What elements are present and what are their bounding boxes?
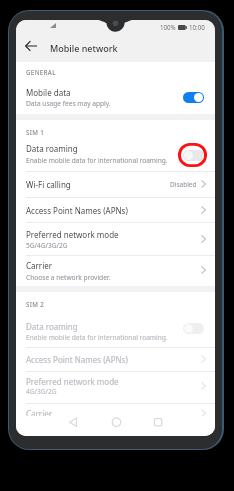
button[interactable] [16,347,215,371]
staticText: Mobile network [50,42,118,54]
button[interactable] [16,141,215,171]
staticText: 10:00 [189,23,205,31]
staticText: 100% [160,23,176,31]
staticText: SIM 1 [26,128,45,136]
button[interactable]: Back [61,416,86,430]
button[interactable] [16,403,215,426]
button[interactable]: Home [104,416,129,430]
button[interactable] [16,223,215,255]
staticText: Enable mobile data for international roa… [26,333,168,342]
button[interactable]: Toggle [183,92,204,103]
staticText: Data roaming [26,321,78,332]
staticText: Wi-Fi calling [26,179,71,190]
button[interactable] [16,83,215,114]
staticText: Enable mobile data for international roa… [26,156,168,165]
button[interactable]: Recents [145,416,170,430]
staticText: 5G/4G/3G/2G [26,241,68,250]
staticText: Disabled [170,180,197,189]
staticText: Choose a network provider. [26,273,111,282]
staticText: Preferred network mode [26,376,119,387]
staticText: Mobile data [26,87,71,98]
button[interactable]: Back [21,36,41,56]
button[interactable] [16,198,215,222]
button[interactable]: Toggle [183,323,204,334]
staticText: Access Point Names (APNs) [26,354,128,365]
staticText: Carrier [26,260,53,271]
button[interactable] [16,171,215,197]
button[interactable] [16,372,215,403]
staticText: GENERAL [26,68,56,76]
staticText: SIM 2 [26,300,45,308]
staticText: Access Point Names (APNs) [26,205,128,216]
staticText: Preferred network mode [26,229,119,240]
button[interactable] [16,318,215,347]
button[interactable] [16,256,215,286]
staticText: 4G/3G/2G [26,387,57,396]
staticText: Data usage fees may apply. [26,99,111,108]
button[interactable]: Toggle [183,150,204,161]
staticText: Carrier [26,408,53,419]
staticText: Data roaming [26,143,78,154]
